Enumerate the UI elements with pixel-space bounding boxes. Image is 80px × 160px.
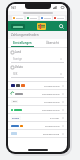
staticText: PayPal [12, 117, 20, 120]
staticText: BTG [13, 100, 17, 103]
staticText: Förbetalning [45, 124, 60, 127]
button[interactable]: Direktbetalning [8, 106, 67, 113]
staticText: Zahlungsmethoden [11, 33, 39, 37]
staticText: Land [15, 50, 22, 54]
button[interactable]: Förbetalning [8, 122, 67, 129]
button[interactable]: Browser tab [40, 16, 52, 20]
button[interactable]: BTG [8, 98, 67, 105]
staticText: Direktbetalning [42, 108, 60, 111]
staticText: Sverige [13, 57, 23, 61]
staticText: Bankbetalning [43, 132, 60, 135]
staticText: Valuta [15, 65, 23, 69]
staticText: Übersicht [46, 41, 59, 45]
button[interactable]: Browser tab [12, 16, 24, 20]
staticText: Kortbetalning [44, 84, 60, 87]
button[interactable]: Browser tab [26, 16, 38, 20]
staticText: Einstellungen [13, 41, 32, 45]
staticText: Direktbetalning [42, 92, 60, 95]
staticText: e-Wallet [50, 116, 60, 119]
staticText: SEK [13, 72, 18, 76]
button[interactable]: Sverige [11, 55, 64, 62]
button[interactable]: Kortbetalning [8, 82, 67, 89]
button[interactable]: Home [11, 24, 25, 29]
button[interactable]: SEK [11, 70, 64, 77]
button[interactable]: Einstellungen [8, 39, 37, 47]
button[interactable]: Search [58, 23, 64, 29]
button[interactable]: Browser tab [53, 16, 65, 20]
button[interactable]: PayPal [8, 114, 67, 121]
staticText: Kortbetalning [44, 100, 60, 103]
button[interactable]: Bankbetalning [8, 130, 67, 137]
button[interactable]: Shop logo [37, 23, 46, 30]
button[interactable]: Übersicht [37, 39, 67, 47]
button[interactable]: Direktbetalning [8, 90, 67, 97]
staticText: 9:41 [11, 6, 16, 9]
